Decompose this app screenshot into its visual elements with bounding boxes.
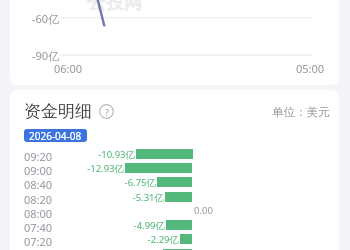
staticText: ? (105, 106, 109, 118)
staticText: 07:20 (24, 234, 53, 248)
staticText: -4.99亿 (10, 219, 165, 232)
button[interactable]: 07:40 (10, 220, 339, 234)
button[interactable]: 08:40 (10, 177, 339, 191)
staticText: 09:20 (24, 149, 53, 163)
staticText: -6.75亿 (10, 176, 156, 189)
staticText: 09:00 (24, 163, 53, 177)
button[interactable]: 08:20 (10, 192, 339, 206)
staticText: -12.93亿 (10, 162, 124, 175)
staticText: 云投网 (88, 0, 142, 15)
button[interactable]: 09:00 (10, 163, 339, 177)
staticText: -90亿 (32, 48, 60, 63)
button[interactable]: 2026-04-08 (24, 129, 87, 142)
staticText: 08:40 (24, 177, 53, 191)
staticText: 08:20 (24, 192, 53, 206)
staticText: -2.29亿 (10, 233, 179, 246)
staticText: 2026-04-08 (29, 129, 82, 142)
staticText: 05:00 (296, 61, 325, 76)
staticText: 07:40 (24, 220, 53, 234)
staticText: 资金明细 (24, 101, 92, 122)
staticText: 08:00 (24, 206, 53, 220)
button[interactable]: 07:00 (10, 249, 339, 250)
staticText: -5.31亿 (10, 191, 164, 204)
staticText: 06:00 (54, 61, 83, 76)
staticText: 0.00 (194, 204, 213, 217)
button[interactable]: 09:20 (10, 149, 339, 163)
staticText: 单位：美元 (272, 105, 330, 119)
button[interactable]: 08:00 (10, 206, 339, 220)
button[interactable]: 07:20 (10, 234, 339, 248)
staticText: -60亿 (32, 11, 60, 26)
button[interactable]: Help (99, 104, 114, 119)
staticText: -10.93亿 (10, 148, 135, 161)
